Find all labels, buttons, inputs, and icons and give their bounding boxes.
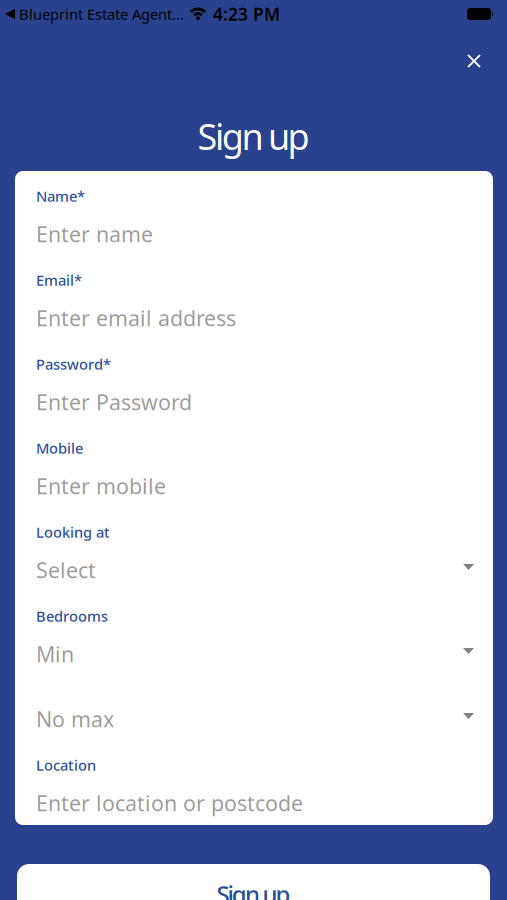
staticText: Sign up — [197, 112, 310, 160]
button[interactable]: Enter Password — [36, 388, 474, 416]
button[interactable]: Select — [36, 556, 474, 584]
staticText: Enter mobile — [36, 472, 166, 500]
staticText: No max — [36, 705, 114, 733]
staticText: Looking at — [36, 522, 110, 542]
staticText: Enter Password — [36, 388, 192, 416]
staticText: Name* — [36, 186, 85, 206]
staticText: Blueprint Estate Agent... — [19, 4, 184, 24]
staticText: Select — [36, 556, 96, 584]
button[interactable]: Min — [36, 640, 474, 668]
staticText: Enter location or postcode — [36, 789, 303, 817]
staticText: Mobile — [36, 438, 83, 458]
staticText: Bedrooms — [36, 606, 108, 626]
staticText: Enter email address — [36, 304, 236, 332]
button[interactable] — [459, 46, 488, 75]
staticText: Sign up — [216, 878, 291, 900]
staticText: Min — [36, 640, 74, 668]
button[interactable]: No max — [36, 705, 474, 733]
staticText: Password* — [36, 354, 111, 374]
staticText: Email* — [36, 270, 82, 290]
staticText: Enter name — [36, 220, 153, 248]
button[interactable]: Sign up — [17, 864, 490, 900]
button[interactable]: Enter mobile — [36, 472, 474, 500]
button[interactable]: Enter email address — [36, 304, 474, 332]
button[interactable]: Enter name — [36, 220, 474, 248]
button[interactable]: Enter location or postcode — [36, 789, 474, 817]
staticText: 4:23 PM — [213, 2, 280, 25]
staticText: Location — [36, 755, 96, 775]
